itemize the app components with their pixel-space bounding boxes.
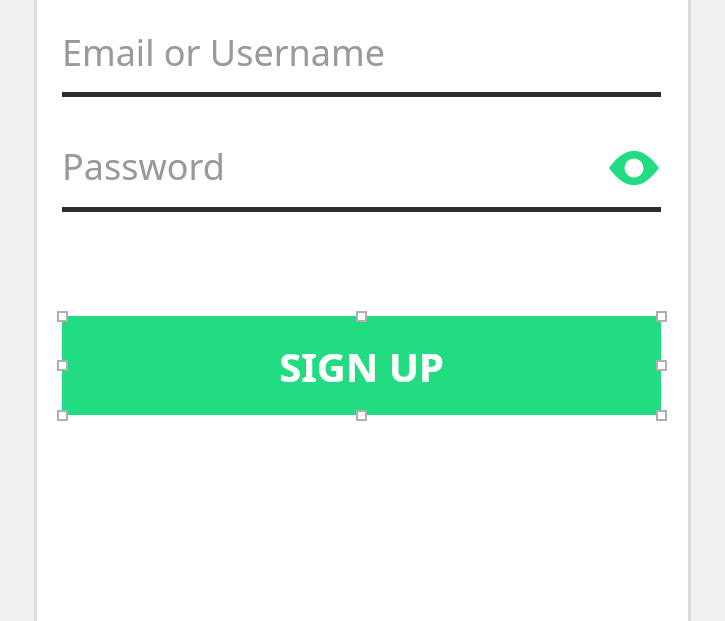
- staticText: SIGN UP: [279, 339, 444, 393]
- button[interactable]: Show password: [604, 142, 664, 194]
- staticText: Email or Username: [62, 28, 385, 77]
- button[interactable]: SIGN UP: [62, 316, 661, 415]
- staticText: Password: [62, 142, 225, 191]
- button[interactable]: Email or Username: [62, 28, 661, 97]
- button[interactable]: Password: [62, 142, 661, 212]
